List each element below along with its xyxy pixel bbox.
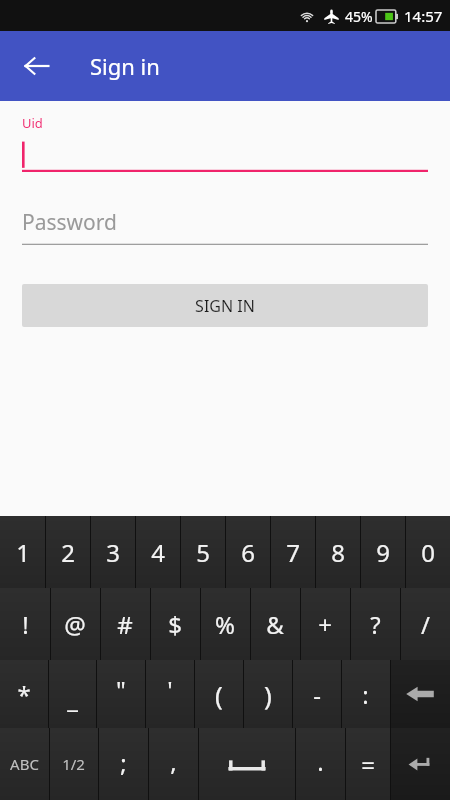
button[interactable]: Backspace [390, 660, 450, 728]
staticText: $ [168, 608, 182, 641]
staticText: Uid [22, 114, 43, 132]
staticText: , [170, 745, 177, 778]
staticText: @ [64, 608, 86, 641]
button[interactable]: ? [350, 588, 400, 660]
staticText: = [361, 748, 375, 781]
button[interactable]: = [345, 728, 390, 800]
button[interactable]: $ [150, 588, 200, 660]
staticText: ; [120, 746, 127, 779]
button[interactable]: & [250, 588, 300, 660]
staticText: ( [215, 677, 223, 712]
staticText: Sign in [90, 51, 160, 81]
staticText: 2 [61, 536, 75, 569]
staticText: 8 [331, 536, 345, 569]
button[interactable]: 6 [225, 516, 270, 588]
button[interactable]: , [148, 728, 198, 800]
staticText: 45% [345, 7, 373, 26]
staticText: Password [22, 208, 117, 237]
staticText: : [362, 678, 369, 711]
button[interactable]: 7 [270, 516, 315, 588]
button[interactable]: " [96, 660, 145, 728]
button[interactable]: 0 [405, 516, 450, 588]
staticText: / [421, 608, 430, 641]
button[interactable]: : [341, 660, 390, 728]
staticText: ! [22, 608, 29, 641]
staticText: 3 [106, 536, 120, 569]
button[interactable]: _ [48, 660, 96, 728]
button[interactable]: Enter [390, 728, 450, 800]
button[interactable]: 5 [180, 516, 225, 588]
button[interactable]: ( [194, 660, 243, 728]
staticText: 9 [376, 536, 390, 569]
button[interactable]: 8 [315, 516, 360, 588]
button[interactable]: 1 [0, 516, 45, 588]
staticText: 1/2 [62, 754, 85, 774]
staticText: ) [264, 677, 272, 712]
staticText: . [317, 745, 324, 778]
staticText: 6 [241, 536, 255, 569]
staticText: " [116, 673, 126, 706]
button[interactable]: 1/2 [49, 728, 98, 800]
button[interactable]: Back [13, 42, 61, 90]
button[interactable]: ' [145, 660, 194, 728]
staticText: - [313, 678, 321, 711]
button[interactable]: 3 [90, 516, 135, 588]
button[interactable]: ABC [0, 728, 49, 800]
staticText: # [117, 608, 133, 641]
button[interactable] [22, 140, 428, 172]
button[interactable]: . [295, 728, 345, 800]
staticText: % [215, 608, 235, 641]
button[interactable]: - [292, 660, 341, 728]
button[interactable]: / [400, 588, 450, 660]
staticText: ABC [10, 754, 39, 774]
staticText: 5 [196, 536, 210, 569]
button[interactable]: 9 [360, 516, 405, 588]
staticText: 7 [286, 536, 300, 569]
button[interactable]: % [200, 588, 250, 660]
staticText: 1 [16, 536, 30, 569]
staticText: SIGN IN [195, 295, 255, 317]
button[interactable]: ! [0, 588, 50, 660]
button[interactable]: + [300, 588, 350, 660]
button[interactable]: # [100, 588, 150, 660]
button[interactable]: ) [243, 660, 292, 728]
staticText: * [17, 678, 31, 711]
button[interactable]: Space [198, 728, 295, 800]
staticText: 4 [151, 536, 165, 569]
staticText: 0 [421, 536, 435, 569]
button[interactable]: 4 [135, 516, 180, 588]
button[interactable]: @ [50, 588, 100, 660]
staticText: ? [370, 608, 381, 641]
staticText: + [318, 608, 332, 641]
button[interactable]: * [0, 660, 48, 728]
staticText: & [266, 608, 284, 641]
button[interactable]: SIGN IN [22, 284, 428, 327]
button[interactable]: 2 [45, 516, 90, 588]
staticText: ' [167, 673, 173, 706]
staticText: _ [67, 682, 78, 715]
button[interactable]: ; [98, 728, 148, 800]
staticText: 14:57 [404, 6, 443, 26]
button[interactable]: Password [22, 208, 428, 245]
